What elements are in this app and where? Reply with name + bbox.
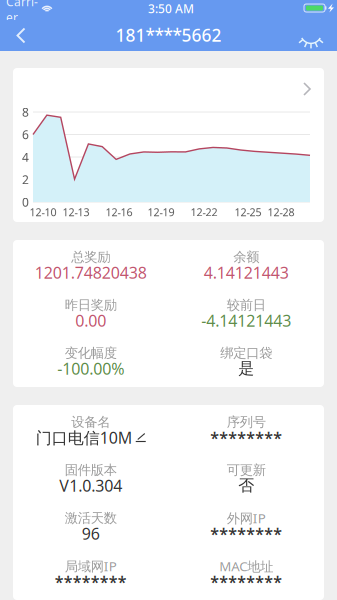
staticText: 6: [22, 126, 29, 142]
staticText: 12-28: [267, 205, 294, 219]
staticText: ********: [210, 427, 282, 448]
staticText: 固件版本: [65, 462, 117, 478]
staticText: ********: [55, 571, 127, 592]
staticText: 序列号: [227, 414, 266, 430]
staticText: ********: [210, 523, 282, 544]
staticText: 1201.74820438: [35, 262, 147, 283]
staticText: 0.00: [75, 310, 106, 331]
staticText: -4.14121443: [201, 310, 291, 331]
staticText: Carrier: [6, 0, 38, 25]
staticText: 绑定口袋: [220, 345, 272, 361]
staticText: 181****5662: [115, 23, 221, 46]
staticText: 12-13: [62, 205, 89, 219]
staticText: 局域网IP: [65, 557, 117, 575]
staticText: ********: [210, 571, 282, 592]
staticText: 变化幅度: [65, 345, 117, 361]
button[interactable]: 8: [13, 68, 324, 222]
staticText: 昨日奖励: [65, 297, 117, 313]
staticText: 4: [22, 149, 29, 165]
staticText: 0: [22, 194, 29, 210]
staticText: 较前日: [227, 297, 266, 313]
staticText: 外网IP: [227, 509, 266, 527]
staticText: V1.0.304: [59, 475, 122, 496]
button[interactable]: Back: [1, 20, 41, 51]
staticText: 是: [238, 359, 254, 378]
staticText: 设备名: [71, 414, 110, 430]
staticText: 96: [82, 523, 100, 544]
staticText: 8: [22, 104, 29, 120]
staticText: -100.00%: [57, 358, 124, 379]
staticText: 12-19: [147, 205, 174, 219]
button[interactable]: Toggle value visibility: [289, 20, 333, 51]
staticText: 4.14121443: [204, 262, 289, 283]
staticText: 激活天数: [65, 510, 117, 526]
staticText: 余额: [233, 249, 259, 265]
staticText: 3:50 AM: [148, 0, 194, 16]
staticText: 门口电信10M: [36, 427, 133, 448]
staticText: 12-25: [234, 205, 261, 219]
staticText: 总奖励: [71, 249, 110, 265]
staticText: 可更新: [227, 462, 266, 478]
staticText: 12-22: [190, 205, 217, 219]
staticText: 2: [22, 171, 29, 187]
staticText: 12-16: [105, 205, 132, 219]
staticText: 否: [238, 476, 254, 495]
staticText: MAC地址: [219, 557, 273, 575]
staticText: 12-10: [29, 205, 56, 219]
